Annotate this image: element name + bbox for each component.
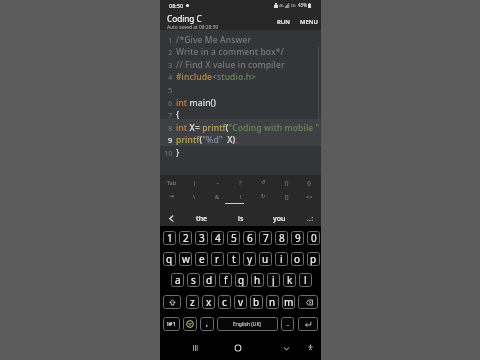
staticText: 5 [168, 85, 173, 95]
button[interactable]: [] [275, 189, 298, 203]
button[interactable]: k [283, 273, 296, 287]
button[interactable]: 4 [211, 231, 224, 245]
button[interactable]: a [171, 273, 184, 287]
staticText: {} [307, 179, 312, 186]
button[interactable]: z [186, 295, 199, 309]
button[interactable]: ? [229, 175, 252, 189]
button[interactable]: . [281, 317, 294, 331]
button[interactable]: ! [229, 189, 252, 203]
staticText: h [254, 273, 261, 287]
staticText: u [262, 252, 269, 266]
button[interactable]: Hide keyboard [278, 340, 294, 356]
button[interactable]: 6 [243, 231, 256, 245]
staticText: w [182, 252, 190, 266]
button[interactable]: n [266, 295, 279, 309]
button[interactable]: you [260, 209, 299, 228]
button[interactable]: c [218, 295, 231, 309]
staticText: & [215, 193, 220, 200]
button[interactable]: ↻ [252, 189, 275, 203]
button[interactable]: 5 [227, 231, 240, 245]
button[interactable]: Backspace [298, 295, 318, 309]
staticText: ! [240, 193, 242, 200]
other: Emoji [183, 317, 197, 331]
button[interactable]: ~ [206, 175, 229, 189]
staticText: 6 [247, 231, 253, 245]
other: Shift [163, 295, 181, 309]
button[interactable]: Tab [160, 175, 183, 189]
button[interactable]: Enter [298, 317, 318, 331]
button[interactable]: q [163, 252, 176, 266]
button[interactable]: 8 [275, 231, 288, 245]
button[interactable]: t [227, 252, 240, 266]
button[interactable]: l [299, 273, 312, 287]
button[interactable]: () [275, 175, 298, 189]
staticText: p [310, 252, 317, 266]
button[interactable]: x [202, 295, 215, 309]
button[interactable]: y [243, 252, 256, 266]
button[interactable]: d [203, 273, 216, 287]
button[interactable]: v [234, 295, 247, 309]
button[interactable]: p [307, 252, 320, 266]
staticText: a [175, 273, 181, 287]
staticText: 2 [168, 47, 173, 57]
staticText: int X= printf("Coding with mobile " [176, 122, 320, 134]
button[interactable]: 1 [163, 231, 176, 245]
staticText: () [285, 179, 289, 186]
button[interactable]: f [219, 273, 232, 287]
button[interactable]: b [250, 295, 263, 309]
button[interactable]: j [267, 273, 280, 287]
button[interactable]: ⇥ [160, 189, 183, 203]
button[interactable]: ↺ [252, 175, 275, 189]
button[interactable]: s [187, 273, 200, 287]
staticText: 9 [295, 231, 301, 245]
staticText: !#1 [167, 320, 176, 328]
staticText: \ [193, 193, 196, 200]
staticText: c [222, 295, 227, 309]
button[interactable]: is [221, 209, 260, 228]
button[interactable]: 9 [291, 231, 304, 245]
staticText: 8 [168, 123, 173, 133]
button[interactable]: Recents [187, 340, 203, 356]
staticText: , [206, 319, 208, 329]
staticText: 43% [298, 2, 307, 8]
staticText: 4G [279, 3, 284, 8]
button[interactable]: \ [183, 189, 206, 203]
staticText: 5G [291, 3, 296, 8]
button[interactable]: 3 [195, 231, 208, 245]
staticText: k [287, 273, 293, 287]
staticText: MENU [300, 18, 318, 26]
button[interactable]: 2 [179, 231, 192, 245]
button[interactable]: <> [298, 189, 321, 203]
button[interactable]: MENU [297, 16, 321, 28]
button[interactable]: m [282, 295, 295, 309]
button[interactable]: e [195, 252, 208, 266]
button[interactable]: RUN [274, 16, 293, 28]
staticText: 3 [168, 60, 173, 70]
button[interactable]: More options [299, 209, 321, 228]
button[interactable]: w [179, 252, 192, 266]
button[interactable]: i [275, 252, 288, 266]
button[interactable]: Previous suggestions [160, 209, 182, 228]
staticText: ? [239, 179, 242, 186]
button[interactable]: Accessibility [303, 340, 318, 355]
button[interactable]: u [259, 252, 272, 266]
button[interactable]: Shift [163, 295, 181, 309]
button[interactable]: English (UK) [217, 317, 278, 331]
button[interactable]: | [183, 175, 206, 189]
button[interactable]: , [200, 317, 214, 331]
staticText: Write in a comment box*/ [176, 46, 284, 58]
button[interactable]: g [235, 273, 248, 287]
button[interactable]: 7 [259, 231, 272, 245]
button[interactable]: Emoji [183, 317, 197, 331]
button[interactable]: !#1 [163, 317, 180, 331]
button[interactable]: & [206, 189, 229, 203]
staticText: t [232, 252, 236, 266]
button[interactable]: the [182, 209, 221, 228]
button[interactable]: h [251, 273, 264, 287]
button[interactable]: o [291, 252, 304, 266]
button[interactable]: 0 [307, 231, 320, 245]
button[interactable]: {} [298, 175, 321, 189]
button[interactable]: Home [230, 340, 246, 356]
button[interactable]: r [211, 252, 224, 266]
staticText: r [215, 252, 220, 266]
